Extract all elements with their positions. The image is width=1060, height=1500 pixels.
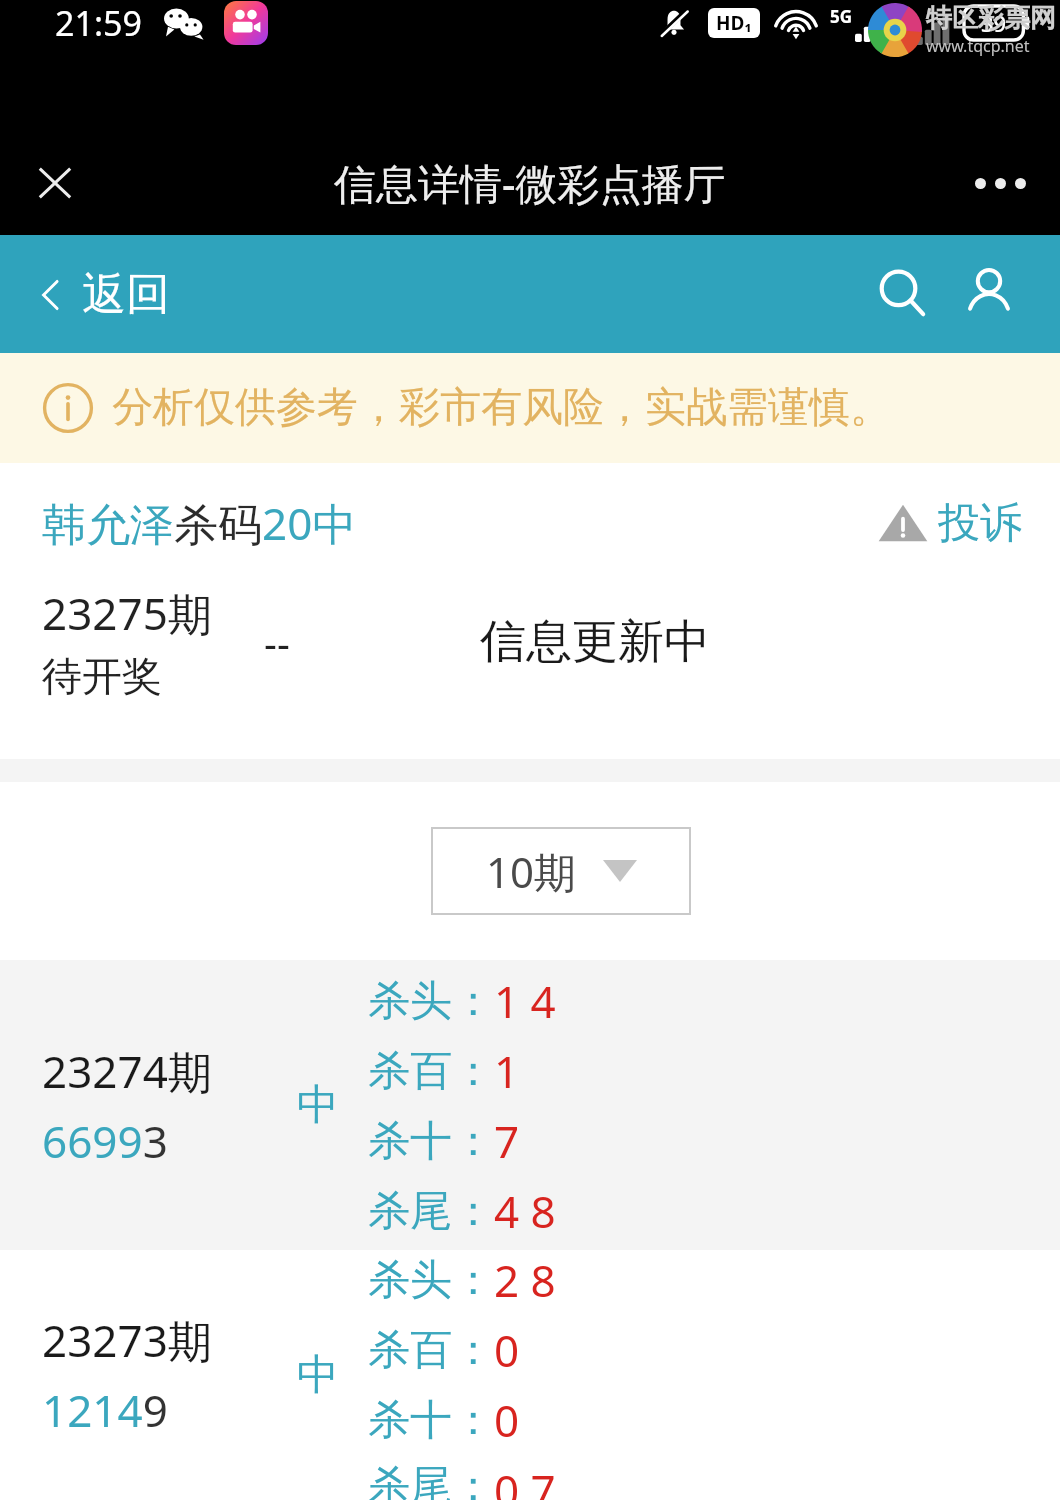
staticText: 中 xyxy=(297,1349,339,1402)
staticText: 杀头： xyxy=(368,1254,494,1307)
staticText: 0 xyxy=(494,1320,520,1380)
staticText: 返回 xyxy=(82,267,170,322)
staticText: 杀百： xyxy=(368,1045,494,1098)
staticText: 杀十： xyxy=(368,1394,494,1447)
button[interactable]: 23273期 xyxy=(0,1250,1060,1500)
staticText: 杀百： xyxy=(368,1324,494,1377)
staticText: 0 xyxy=(494,1390,520,1450)
staticText: 5G xyxy=(830,5,853,28)
staticText: 杀尾： xyxy=(368,1460,494,1500)
staticText: 分析仅供参考，彩市有风险，实战需谨慎。 xyxy=(112,382,891,434)
button[interactable]: More options xyxy=(964,153,1036,213)
staticText: HD₁ xyxy=(716,10,752,36)
staticText: 23273期 xyxy=(42,1310,212,1370)
staticText: 0 7 xyxy=(494,1460,556,1500)
button[interactable]: Search xyxy=(860,251,946,337)
staticText: 39 xyxy=(981,8,1007,38)
staticText: 21:59 xyxy=(55,0,142,46)
staticText: 杀头： xyxy=(368,975,494,1028)
staticText: 12149 xyxy=(42,1380,168,1440)
staticText: 信息更新中 xyxy=(480,613,710,671)
staticText: 韩允泽杀码20中 xyxy=(42,493,357,553)
staticText: 23274期 xyxy=(42,1041,212,1101)
staticText: 1 4 xyxy=(494,971,556,1031)
button[interactable]: 10期 xyxy=(431,827,691,915)
staticText: 中 xyxy=(297,1079,339,1132)
staticText: 特区彩票网 xyxy=(926,2,1056,35)
staticText: 杀十： xyxy=(368,1115,494,1168)
staticText: 投诉 xyxy=(938,497,1022,550)
staticText: 待开奖 xyxy=(42,651,162,701)
staticText: 1 xyxy=(494,1041,520,1101)
staticText: www.tqcp.net xyxy=(926,35,1030,57)
button[interactable]: 投诉 xyxy=(876,496,1022,550)
staticText: 4 8 xyxy=(494,1181,556,1241)
button[interactable]: Profile xyxy=(946,251,1032,337)
staticText: -- xyxy=(264,615,290,669)
button[interactable]: 23274期 xyxy=(0,961,1060,1250)
staticText: × xyxy=(901,1,914,31)
staticText: 10期 xyxy=(486,843,577,900)
button[interactable]: 返回 xyxy=(34,267,170,322)
staticText: 23275期 xyxy=(42,583,212,643)
staticText: 7 xyxy=(494,1111,520,1171)
staticText: 杀尾： xyxy=(368,1185,494,1238)
staticText: 信息详情-微彩点播厅 xyxy=(334,154,726,211)
staticText: 66993 xyxy=(42,1111,168,1171)
staticText: 2 8 xyxy=(494,1250,556,1310)
button[interactable]: Close xyxy=(20,148,90,218)
